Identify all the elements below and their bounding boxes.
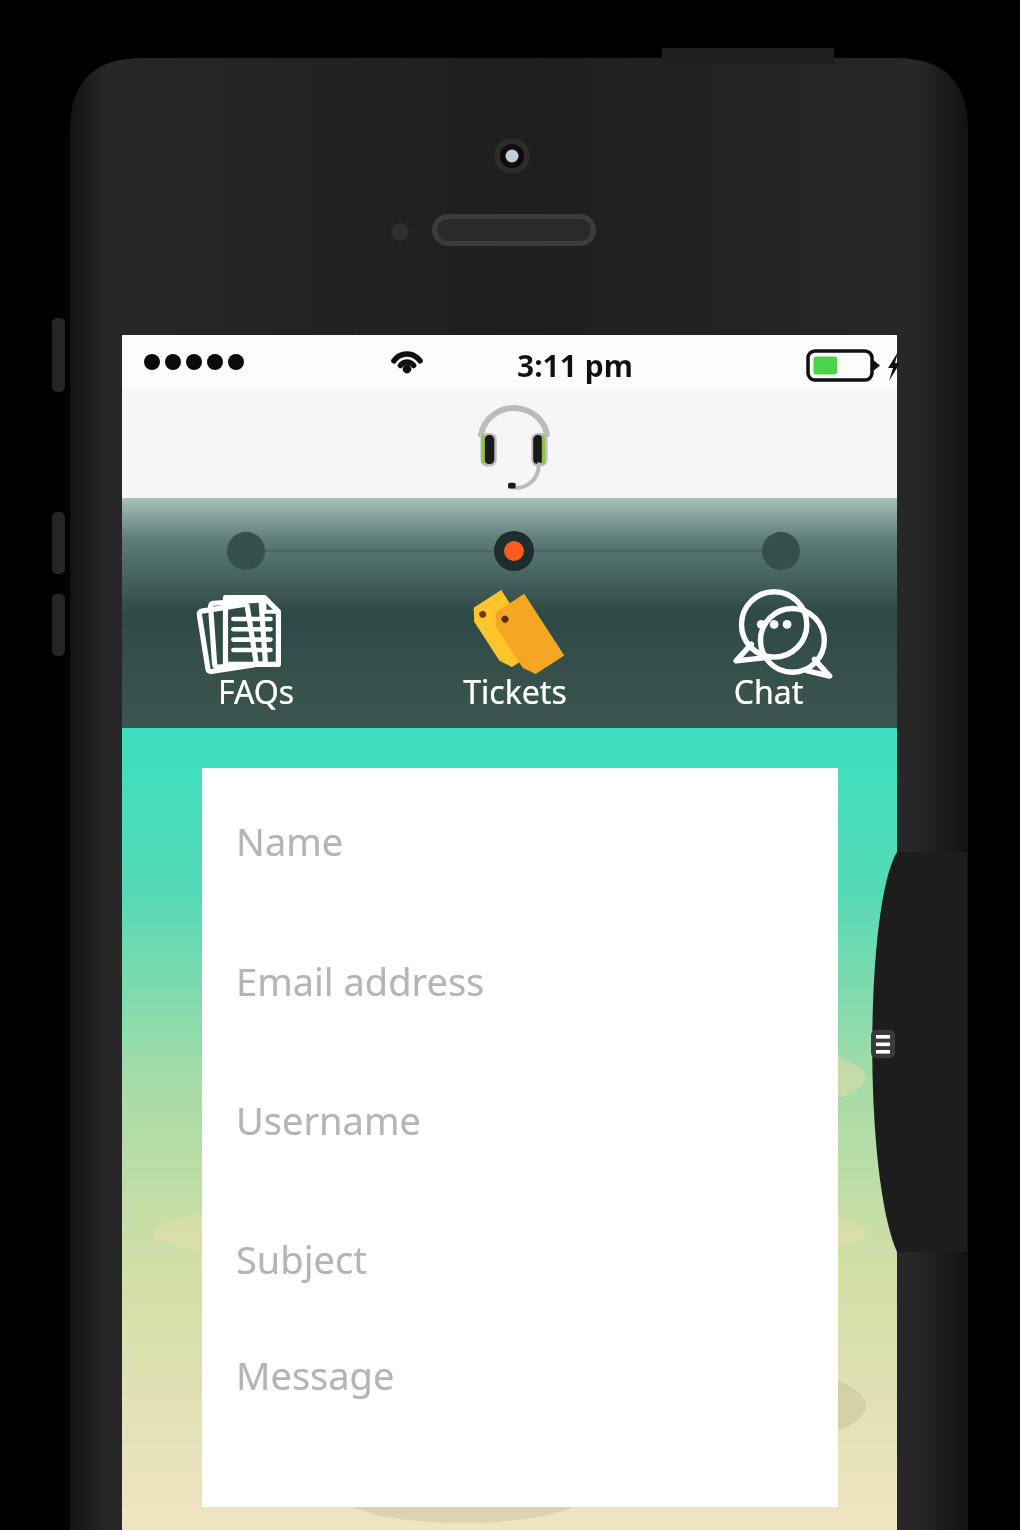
button[interactable]: Tickets (390, 575, 640, 728)
staticText: Tickets (390, 670, 640, 714)
button[interactable]: Message (202, 1325, 838, 1507)
staticText: Subject (236, 1233, 367, 1285)
button[interactable]: Chat (640, 575, 897, 728)
staticText: Email address (236, 955, 485, 1007)
staticText: FAQs (122, 670, 390, 714)
staticText: Username (236, 1094, 421, 1146)
staticText: Name (236, 815, 344, 867)
staticText: Chat (640, 670, 897, 714)
button[interactable]: Username (202, 1047, 838, 1193)
button[interactable]: Subject (202, 1186, 838, 1332)
staticText: 3:11 pm (517, 345, 633, 385)
button[interactable]: Name (202, 768, 838, 914)
button[interactable]: Support headset logo (450, 390, 578, 496)
staticText: Message (236, 1349, 395, 1401)
button[interactable]: FAQs (122, 575, 390, 728)
button[interactable]: Email address (202, 908, 838, 1054)
